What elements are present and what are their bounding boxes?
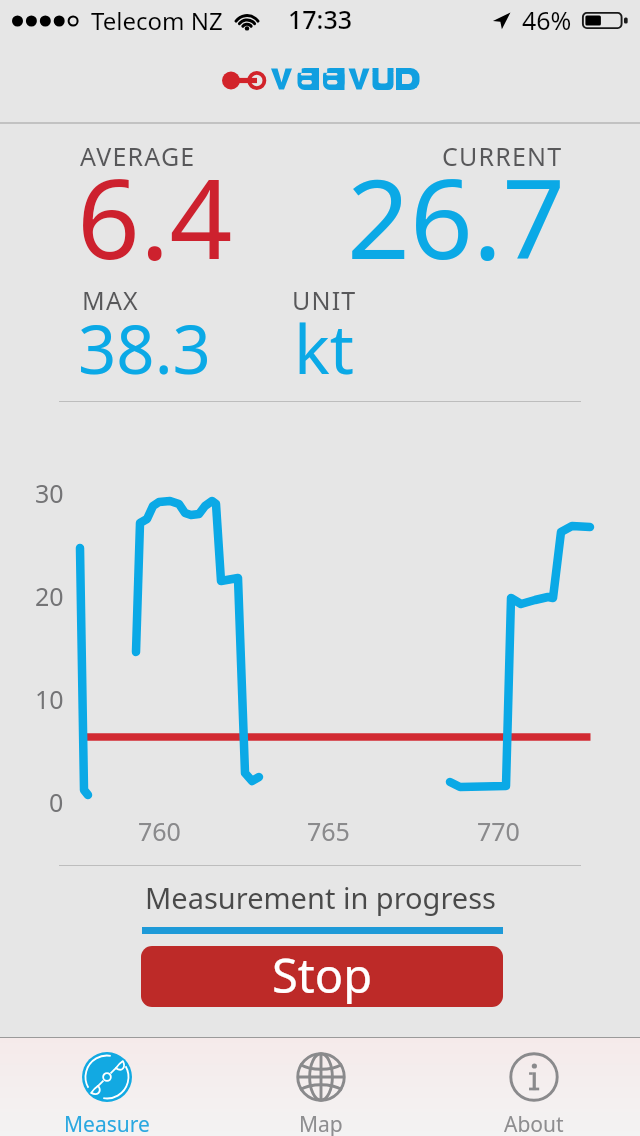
staticText: 20 — [35, 579, 64, 613]
staticText: kt — [294, 302, 354, 393]
staticText: 765 — [307, 814, 350, 846]
other: Location services active — [492, 11, 511, 30]
staticText: 46% — [522, 3, 572, 37]
staticText: 0 — [49, 785, 64, 819]
button[interactable]: Vaavud — [219, 64, 425, 94]
staticText: CURRENT — [442, 139, 563, 173]
staticText: MAX — [82, 283, 139, 317]
staticText: 26.7 — [347, 141, 566, 291]
staticText: 770 — [477, 814, 520, 846]
staticText: 17:33 — [288, 2, 353, 36]
other: Battery 46 percent — [582, 12, 628, 29]
other: Wi-Fi — [234, 11, 260, 31]
staticText: 10 — [35, 682, 64, 716]
button[interactable]: Stop — [141, 946, 503, 1007]
staticText: UNIT — [292, 283, 357, 317]
staticText: 30 — [35, 476, 64, 510]
staticText: Telecom NZ — [91, 4, 223, 37]
staticText: 38.3 — [78, 302, 211, 393]
button[interactable]: Map — [214, 1038, 427, 1136]
staticText: About — [504, 1110, 564, 1136]
button[interactable]: Measure — [0, 1038, 214, 1136]
staticText: Measure — [64, 1110, 150, 1136]
staticText: 760 — [138, 814, 181, 846]
staticText: Stop — [272, 946, 373, 1004]
staticText: Measurement in progress — [145, 878, 496, 917]
staticText: AVERAGE — [80, 139, 196, 173]
staticText: 6.4 — [77, 141, 233, 291]
button[interactable]: About — [427, 1038, 640, 1136]
other: Signal strength 4 of 5 — [12, 15, 79, 27]
staticText: Map — [299, 1110, 343, 1136]
